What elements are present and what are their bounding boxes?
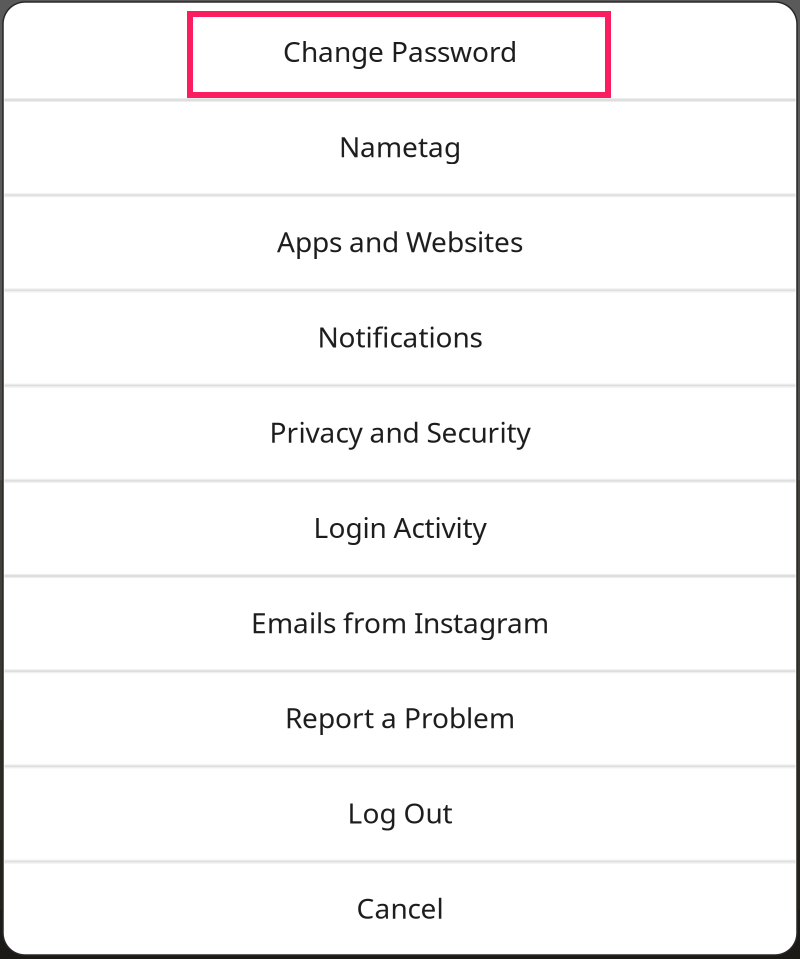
- staticText: Log Out: [347, 794, 452, 831]
- button[interactable]: Report a Problem: [3, 669, 797, 764]
- button[interactable]: Apps and Websites: [3, 193, 797, 288]
- button[interactable]: Emails from Instagram: [3, 574, 797, 669]
- button[interactable]: Change Password: [3, 2, 797, 98]
- staticText: Emails from Instagram: [251, 604, 549, 641]
- button[interactable]: Nametag: [3, 98, 797, 193]
- staticText: Cancel: [356, 889, 443, 926]
- staticText: Change Password: [283, 32, 517, 70]
- staticText: Apps and Websites: [277, 223, 523, 260]
- button[interactable]: Privacy and Security: [3, 383, 797, 478]
- button[interactable]: Cancel: [3, 859, 797, 954]
- button[interactable]: Notifications: [3, 288, 797, 383]
- staticText: Notifications: [317, 318, 482, 355]
- button[interactable]: Login Activity: [3, 478, 797, 574]
- staticText: Nametag: [339, 128, 461, 165]
- button[interactable]: Log Out: [3, 764, 797, 859]
- staticText: Login Activity: [313, 508, 486, 546]
- staticText: Report a Problem: [285, 699, 515, 736]
- staticText: Privacy and Security: [269, 413, 530, 450]
